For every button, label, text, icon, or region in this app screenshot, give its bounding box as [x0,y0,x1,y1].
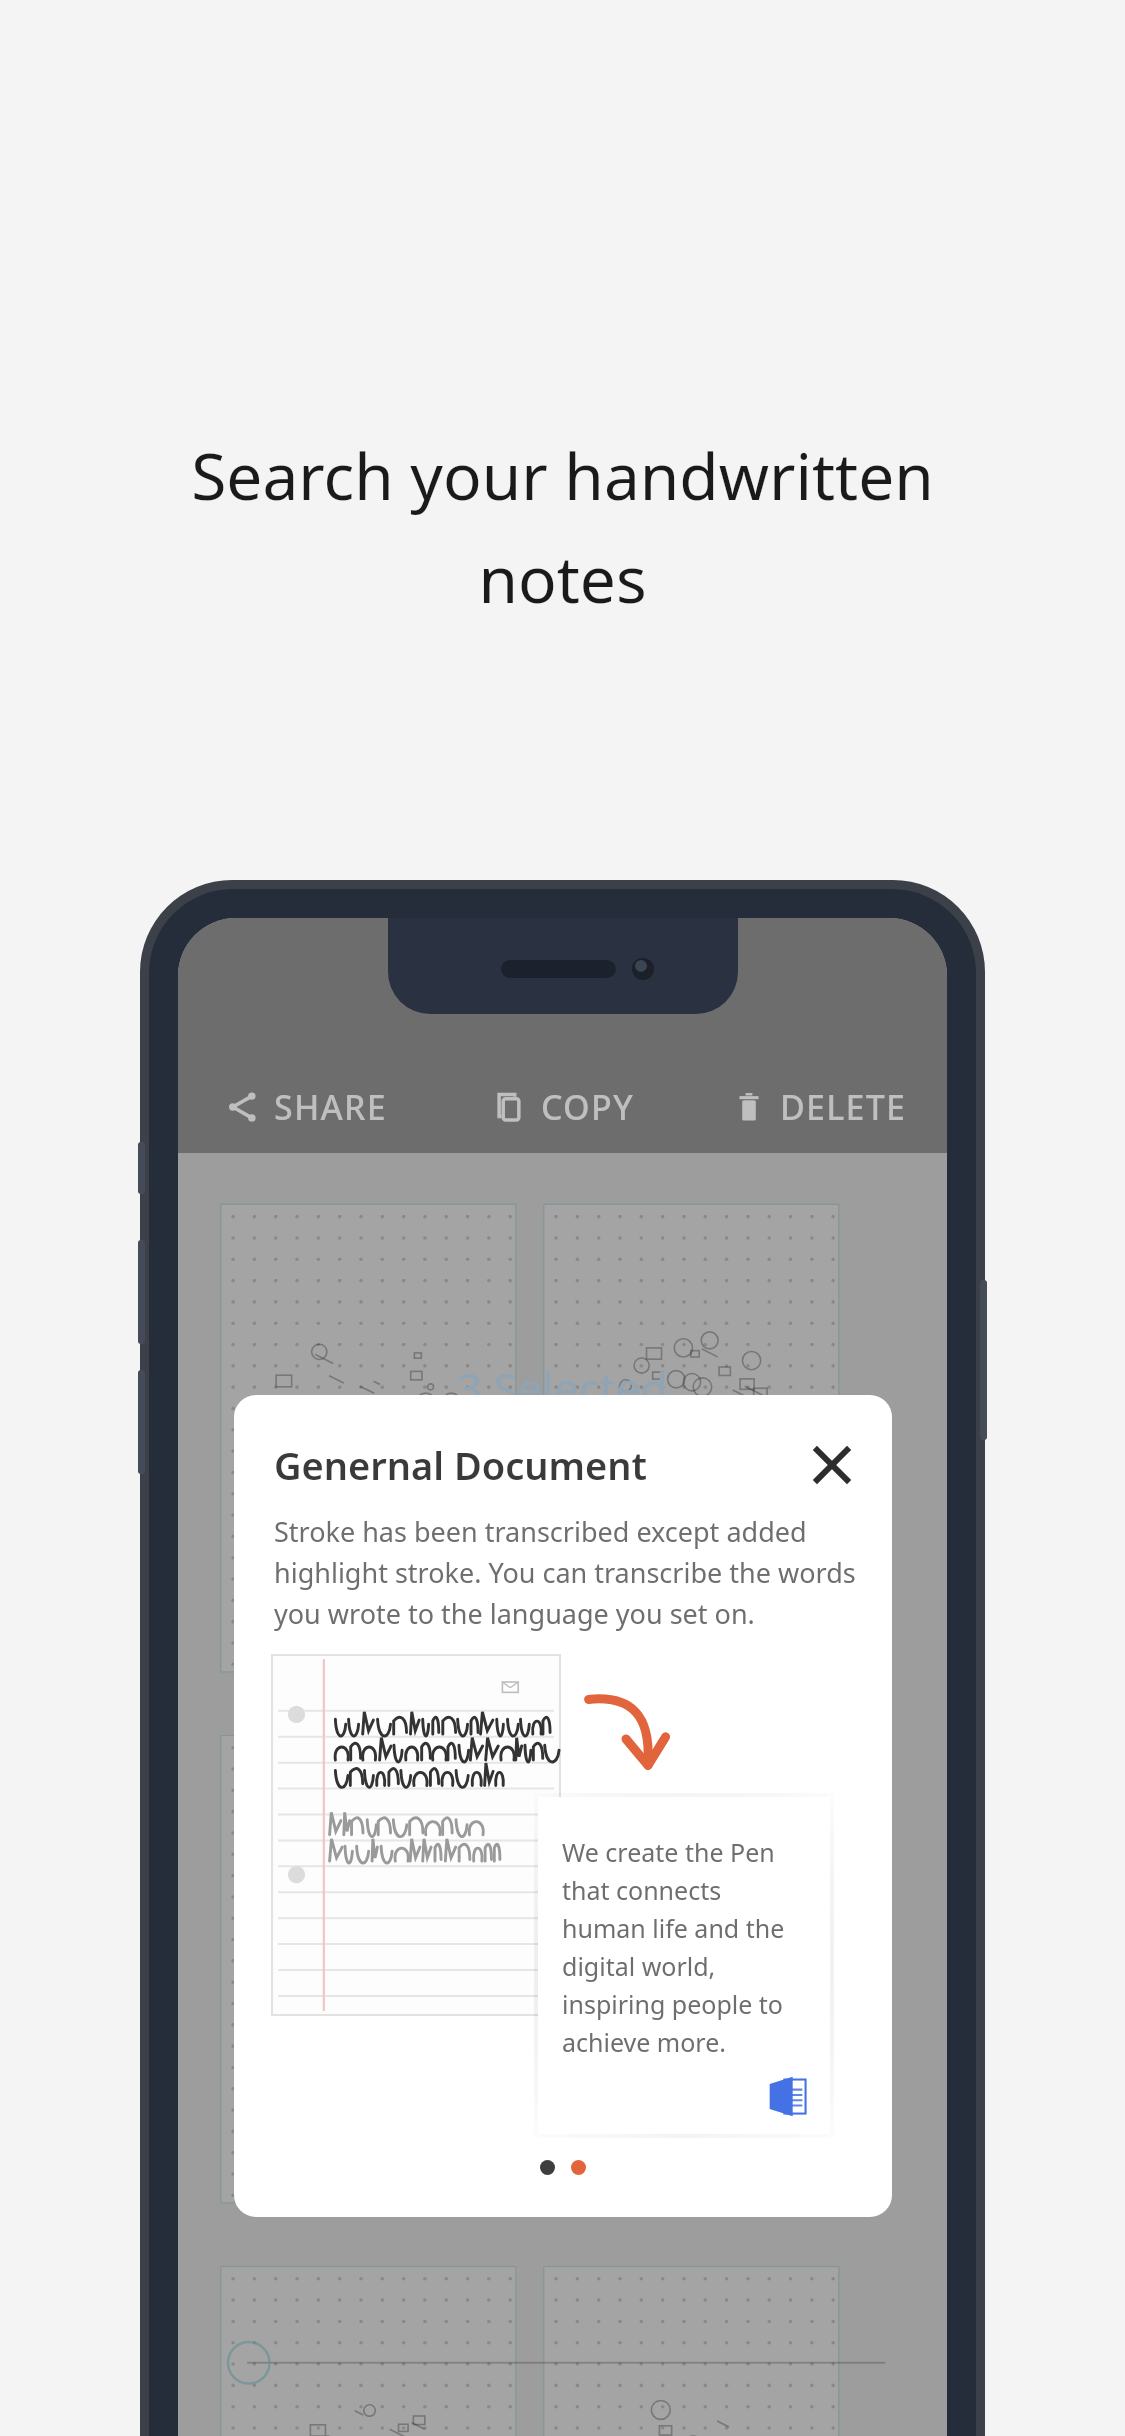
button[interactable]: SHARE [178,1061,435,1153]
staticText: Genernal Document [274,1439,647,1491]
button[interactable]: Close [804,1437,860,1493]
button[interactable]: DELETE [691,1061,947,1153]
button[interactable]: Page 2 [571,2160,586,2175]
staticText: SHARE [274,1084,387,1130]
staticText: Stroke has been transcribed except added… [274,1513,856,1632]
button[interactable]: COPY [435,1061,691,1153]
staticText: notes [478,535,647,622]
staticText: Search your handwritten [191,432,934,519]
staticText: COPY [541,1084,634,1130]
staticText: 3 Selected [457,1358,668,1418]
button[interactable]: Page 1 [540,2160,555,2175]
staticText: DELETE [780,1084,907,1130]
staticText: We create the Pen that connects human li… [562,1835,806,2059]
